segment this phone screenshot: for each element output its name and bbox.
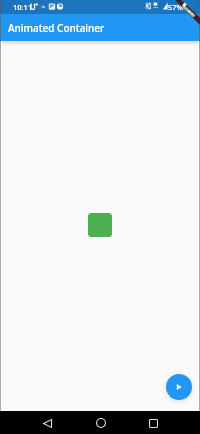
staticText: 57% bbox=[168, 2, 183, 12]
staticText: 10:11 bbox=[13, 2, 33, 12]
staticText: Animated Container bbox=[8, 21, 105, 35]
button[interactable]: Home bbox=[92, 414, 110, 432]
button[interactable]: Play animation bbox=[166, 374, 192, 400]
button[interactable]: Recent apps bbox=[144, 414, 162, 432]
button[interactable]: Back bbox=[38, 414, 56, 432]
